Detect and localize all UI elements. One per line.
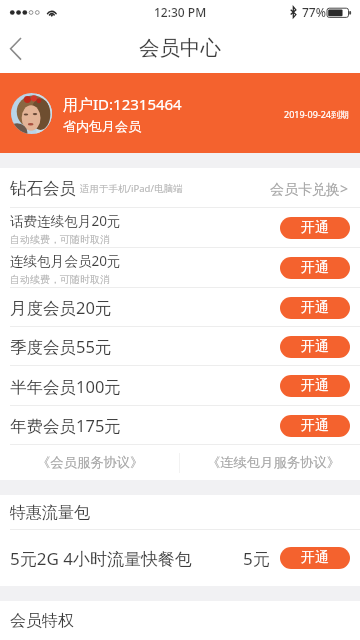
staticText: 钻石会员 — [10, 178, 76, 199]
staticText: 自动续费，可随时取消 — [10, 273, 110, 286]
staticText: 话费连续包月20元 — [10, 211, 121, 230]
button[interactable]: 开通 — [280, 547, 350, 569]
staticText: 季度会员55元 — [10, 335, 112, 358]
staticText: 自动续费，可随时取消 — [10, 233, 110, 246]
staticText: 用户ID:12315464 — [63, 94, 182, 114]
button[interactable]: 会员卡兑换> — [270, 179, 349, 198]
button[interactable]: 半年会员100元 — [0, 366, 360, 406]
button[interactable]: 季度会员55元 — [0, 327, 360, 366]
button[interactable]: 《连续包月服务协议》 — [180, 445, 360, 480]
button[interactable]: 开通 — [280, 257, 350, 279]
button[interactable]: 开通 — [280, 217, 350, 239]
button[interactable]: 开通 — [280, 297, 350, 319]
staticText: 《连续包月服务协议》 — [207, 454, 340, 471]
staticText: 5元2G 4小时流量快餐包 — [10, 547, 192, 570]
button[interactable]: 年费会员175元 — [0, 406, 360, 445]
staticText: 5元 — [243, 547, 270, 570]
staticText: 开通 — [301, 299, 329, 317]
button[interactable]: 开通 — [280, 336, 350, 358]
staticText: 半年会员100元 — [10, 375, 121, 398]
button[interactable]: 月度会员20元 — [0, 288, 360, 327]
staticText: 开通 — [301, 417, 329, 435]
staticText: 特惠流量包 — [10, 503, 90, 523]
staticText: 开通 — [301, 259, 329, 277]
staticText: 适用于手机/iPad/电脑端 — [80, 182, 183, 195]
staticText: 开通 — [301, 219, 329, 237]
button[interactable]: 5元2G 4小时流量快餐包 — [0, 530, 360, 586]
button[interactable]: 话费连续包月20元 — [0, 208, 360, 248]
staticText: 12:30 PM — [154, 4, 207, 20]
staticText: 开通 — [301, 338, 329, 356]
staticText: 会员中心 — [139, 35, 221, 61]
button[interactable]: 连续包月会员20元 — [0, 248, 360, 288]
staticText: 开通 — [301, 377, 329, 395]
staticText: 会员卡兑换> — [270, 179, 349, 198]
button[interactable]: 开通 — [280, 415, 350, 437]
button[interactable]: 开通 — [280, 375, 350, 397]
staticText: 月度会员20元 — [10, 296, 112, 319]
button[interactable]: Back — [0, 24, 38, 73]
button[interactable]: 《会员服务协议》 — [0, 445, 180, 480]
staticText: 《会员服务协议》 — [37, 454, 144, 471]
staticText: 年费会员175元 — [10, 414, 121, 437]
staticText: 开通 — [301, 549, 329, 567]
staticText: 会员特权 — [10, 611, 74, 631]
staticText: 连续包月会员20元 — [10, 251, 121, 270]
staticText: 77% — [302, 4, 326, 20]
staticText: 省内包月会员 — [63, 118, 141, 134]
staticText: 2019-09-24到期 — [284, 108, 349, 120]
